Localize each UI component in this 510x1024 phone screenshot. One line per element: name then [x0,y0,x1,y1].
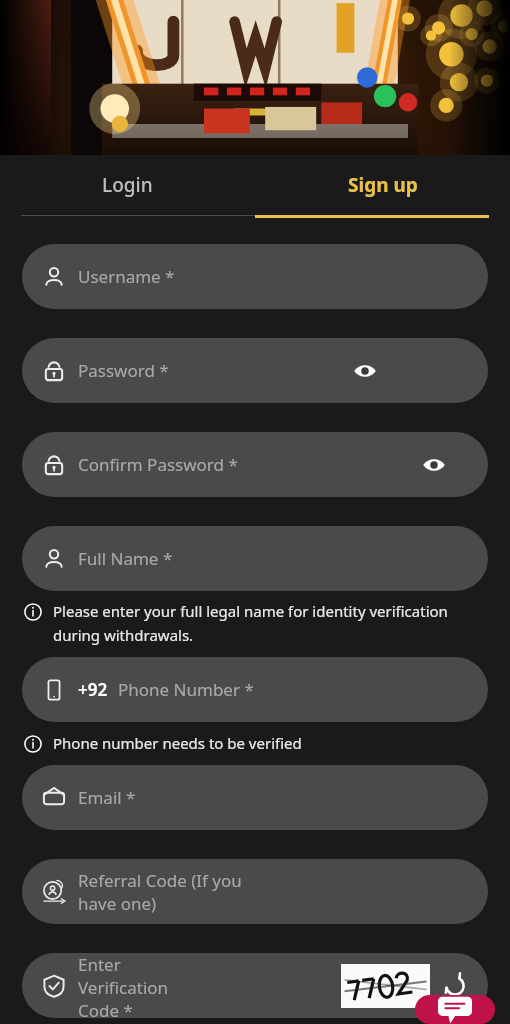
staticText: Confirm Password * [78,453,238,476]
button[interactable]: +92 [22,657,488,722]
staticText: Email * [78,786,136,809]
button[interactable]: Email * [22,765,488,830]
button[interactable]: Show password [418,449,450,481]
staticText: Referral Code (If you have one) [78,869,274,915]
staticText: Password * [78,359,169,382]
staticText: +92 [78,678,108,701]
staticText: Username * [78,265,175,288]
button[interactable]: Sign up [255,155,510,215]
button[interactable]: Password * [22,338,488,403]
button[interactable]: Enter Verification Code * [22,953,488,1018]
staticText: Full Name * [78,547,173,570]
staticText: Phone number needs to be verified [53,733,302,753]
button[interactable]: Referral Code (If you have one) [22,859,488,924]
staticText: Please enter your full legal name for id… [53,601,476,645]
staticText: Enter Verification Code * [78,953,209,1018]
button[interactable]: Username * [22,244,488,309]
staticText: Sign up [348,172,418,198]
button[interactable]: Show password [349,355,381,387]
staticText: Login [102,172,153,198]
button[interactable]: Confirm Password * [22,432,488,497]
button[interactable]: Chat support [415,995,495,1024]
button[interactable]: Login [0,155,255,215]
button[interactable]: Full Name * [22,526,488,591]
staticText: Phone Number * [118,678,254,701]
button[interactable]: Refresh captcha [440,971,470,1001]
